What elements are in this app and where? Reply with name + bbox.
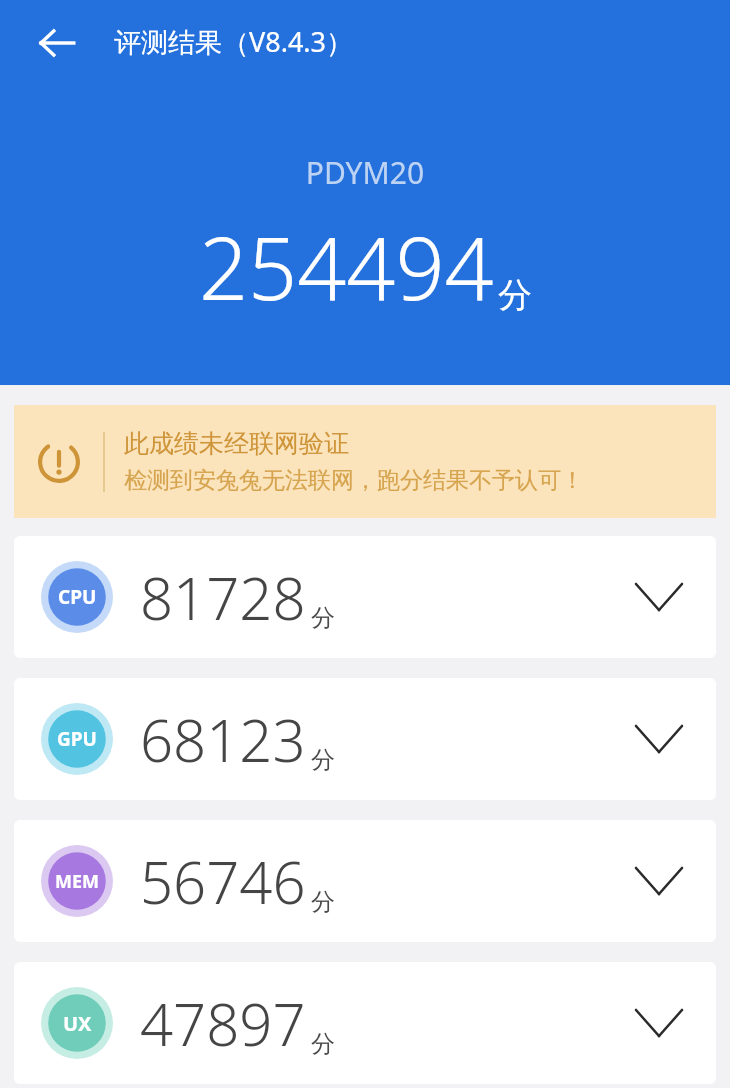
staticText: GPU — [57, 726, 97, 752]
button[interactable]: GPU — [14, 678, 716, 800]
button[interactable]: Expand UX details — [624, 988, 694, 1058]
staticText: 此成绩未经联网验证 — [124, 428, 349, 459]
staticText: PDYM20 — [0, 152, 730, 193]
staticText: 47897 — [140, 984, 306, 1063]
staticText: MEM — [55, 869, 100, 894]
button[interactable]: UX — [14, 962, 716, 1084]
button[interactable]: Back — [26, 14, 88, 72]
button[interactable]: Expand CPU details — [624, 562, 694, 632]
staticText: 分 — [311, 745, 335, 775]
staticText: 分 — [311, 887, 335, 917]
staticText: CPU — [58, 584, 97, 610]
staticText: 评测结果（V8.4.3） — [114, 23, 354, 60]
button[interactable]: Expand MEM details — [624, 846, 694, 916]
button[interactable]: Expand GPU details — [624, 704, 694, 774]
staticText: 分 — [311, 1029, 335, 1059]
button[interactable]: 此成绩未经联网验证 — [14, 405, 716, 518]
staticText: 分 — [311, 603, 335, 633]
staticText: 检测到安兔兔无法联网，跑分结果不予认可！ — [124, 466, 584, 495]
staticText: 254494 — [199, 208, 494, 325]
button[interactable]: CPU — [14, 536, 716, 658]
staticText: 81728 — [140, 558, 306, 637]
button[interactable]: MEM — [14, 820, 716, 942]
staticText: UX — [63, 1010, 92, 1037]
staticText: 56746 — [140, 842, 306, 921]
staticText: 分 — [498, 274, 532, 317]
staticText: 68123 — [140, 700, 306, 779]
